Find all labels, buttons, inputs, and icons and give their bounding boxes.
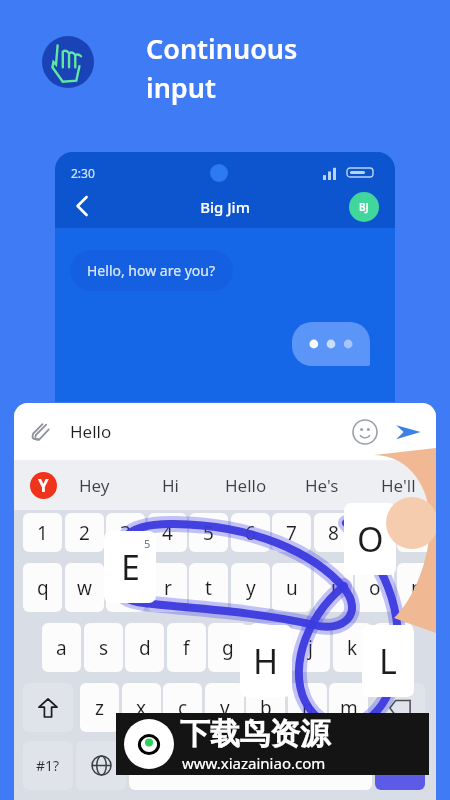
staticText: y xyxy=(246,575,256,601)
button[interactable]: 4 xyxy=(148,513,187,552)
button[interactable]: Backspace xyxy=(375,683,425,732)
staticText: He'll xyxy=(381,474,416,497)
button[interactable]: j xyxy=(291,623,330,672)
button[interactable]: 9 xyxy=(355,513,394,552)
staticText: www.xiazainiao.com xyxy=(182,753,326,773)
button[interactable]: Back xyxy=(65,190,97,222)
staticText: H xyxy=(253,638,279,684)
button[interactable]: v xyxy=(205,683,244,732)
other: Continuous input xyxy=(42,36,94,88)
staticText: 1 xyxy=(37,520,48,546)
button[interactable]: 6 xyxy=(231,513,270,552)
staticText: p xyxy=(411,575,423,601)
button[interactable]: g xyxy=(208,623,247,672)
button[interactable]: 7 xyxy=(272,513,311,552)
staticText: t xyxy=(205,575,212,601)
button[interactable]: p xyxy=(397,563,436,612)
button[interactable]: b xyxy=(246,683,285,732)
button[interactable]: i xyxy=(314,563,353,612)
button[interactable]: 8 xyxy=(314,513,353,552)
staticText: Hello, how are you? xyxy=(87,261,216,280)
staticText: 8 xyxy=(328,520,339,546)
staticText: r xyxy=(164,575,172,601)
staticText: z xyxy=(95,695,104,721)
staticText: BJ xyxy=(359,200,369,214)
staticText: e xyxy=(120,575,131,601)
button[interactable]: e xyxy=(106,563,145,612)
staticText: m xyxy=(340,695,358,721)
button[interactable]: 1 xyxy=(23,513,62,552)
staticText: Hey xyxy=(79,474,110,497)
button[interactable]: l xyxy=(374,623,413,672)
staticText: 2:30 xyxy=(71,165,95,181)
staticText: Hello xyxy=(70,420,112,443)
staticText: i xyxy=(331,575,336,601)
staticText: He's xyxy=(305,474,339,497)
staticText: w xyxy=(77,575,92,601)
staticText: 下载鸟资源 xyxy=(180,715,330,753)
staticText: s xyxy=(99,635,109,661)
button[interactable]: x xyxy=(122,683,161,732)
staticText: d xyxy=(139,635,151,661)
button[interactable]: Hi xyxy=(132,460,208,510)
button[interactable]: k xyxy=(333,623,372,672)
button[interactable]: m xyxy=(329,683,368,732)
button[interactable]: s xyxy=(84,623,123,672)
button[interactable]: Shift xyxy=(23,683,73,732)
button[interactable]: w xyxy=(65,563,104,612)
staticText: Hello xyxy=(225,474,267,497)
button[interactable]: Space xyxy=(129,741,372,790)
button[interactable]: f xyxy=(167,623,206,672)
button[interactable]: #1? xyxy=(23,741,73,790)
button[interactable]: n xyxy=(288,683,327,732)
button[interactable]: z xyxy=(80,683,119,732)
staticText: 2 xyxy=(79,520,90,546)
button[interactable]: q xyxy=(23,563,62,612)
button[interactable]: t xyxy=(189,563,228,612)
staticText: n xyxy=(302,695,314,721)
button[interactable]: y xyxy=(231,563,270,612)
button[interactable]: BJ xyxy=(349,192,379,222)
staticText: Big Jim xyxy=(55,197,395,217)
staticText: o xyxy=(369,575,381,601)
button[interactable]: Keyboard settings xyxy=(30,472,57,499)
staticText: 5 xyxy=(203,520,214,546)
staticText: 5 xyxy=(144,536,151,551)
staticText: 7 xyxy=(286,520,297,546)
button[interactable]: He'll xyxy=(360,460,436,510)
staticText: O xyxy=(357,516,384,562)
staticText: g xyxy=(222,635,234,661)
staticText: E xyxy=(121,544,140,590)
button[interactable]: 2 xyxy=(65,513,104,552)
staticText: f xyxy=(183,635,190,661)
button[interactable]: Hey xyxy=(57,460,132,510)
button[interactable]: r xyxy=(148,563,187,612)
button[interactable]: h xyxy=(250,623,289,672)
button[interactable]: 3 xyxy=(106,513,145,552)
button[interactable]: a xyxy=(42,623,81,672)
button[interactable]: He's xyxy=(284,460,360,510)
button[interactable]: u xyxy=(272,563,311,612)
staticText: h xyxy=(264,635,276,661)
button[interactable]: Hello xyxy=(208,460,284,510)
staticText: k xyxy=(347,635,358,661)
staticText: Continuous xyxy=(146,30,298,67)
button[interactable]: Send xyxy=(394,418,422,446)
staticText: Y xyxy=(38,474,49,497)
staticText: #1? xyxy=(36,756,60,775)
button[interactable]: o xyxy=(355,563,394,612)
button[interactable]: Change language xyxy=(76,741,126,790)
button[interactable]: c xyxy=(163,683,202,732)
button[interactable]: Attach xyxy=(28,419,54,445)
staticText: 6 xyxy=(245,520,256,546)
staticText: input xyxy=(146,69,216,106)
button[interactable]: Emoji xyxy=(352,419,378,445)
button[interactable]: 0 xyxy=(397,513,436,552)
staticText: 4 xyxy=(162,520,173,546)
button[interactable]: Enter xyxy=(375,741,425,790)
button[interactable]: 5 xyxy=(189,513,228,552)
staticText: 3 xyxy=(120,520,131,546)
button[interactable]: d xyxy=(125,623,164,672)
